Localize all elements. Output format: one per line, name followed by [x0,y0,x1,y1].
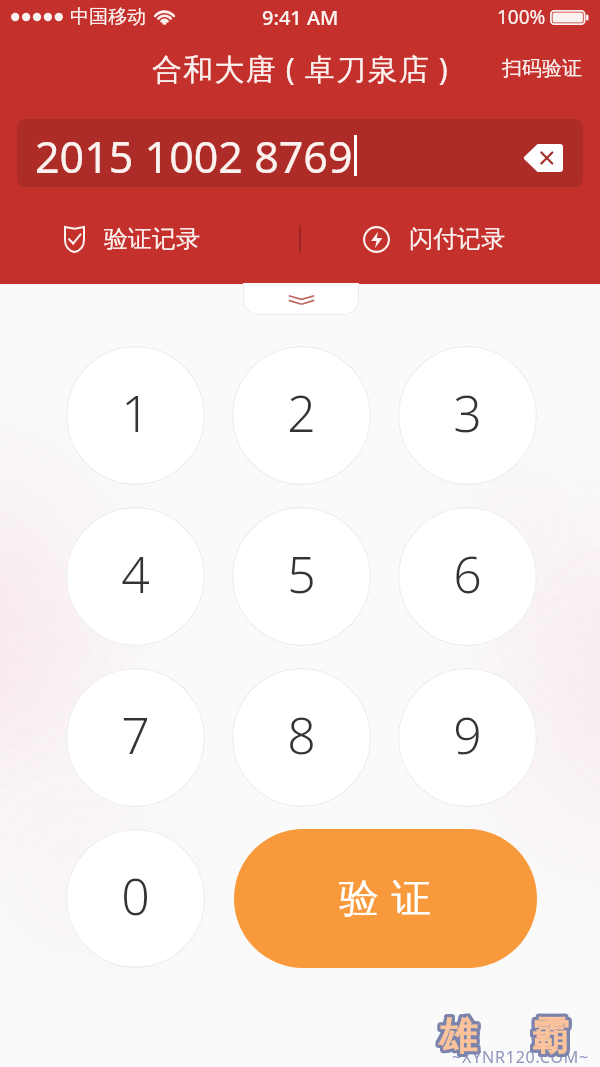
staticText: 雄 [442,1014,480,1062]
staticText: 雄 [440,1015,478,1063]
button[interactable]: Delete [511,128,575,187]
button[interactable]: 2015 1002 8769 [17,119,583,187]
button[interactable]: 5 [232,507,371,646]
staticText: 雄 [439,1015,477,1063]
button[interactable]: 7 [66,668,205,807]
staticText: 霸 [531,1012,569,1060]
staticText: 雄 [441,1010,479,1058]
staticText: 霸 [533,1010,571,1058]
staticText: 0 [121,862,150,930]
staticText: 霸 [532,1009,570,1057]
button[interactable]: 4 [66,507,205,646]
button[interactable]: 扫码验证 [484,43,600,94]
staticText: 雄 [437,1013,475,1061]
staticText: 雄 [442,1012,480,1060]
staticText: 雄 [437,1010,475,1058]
staticText: 4 [121,540,150,608]
staticText: 2015 1002 8769 [35,127,353,186]
staticText: 霸 [532,1015,570,1063]
staticText: 霸 [534,1010,572,1058]
button[interactable]: 6 [398,507,537,646]
staticText: 霸 [531,1009,569,1057]
staticText: 雄 [441,1014,479,1062]
staticText: 霸 [528,1013,566,1061]
staticText: 验证记录 [104,224,200,254]
staticText: 霸 [529,1009,567,1057]
staticText: 雄 [441,1011,479,1059]
staticText: 霸 [534,1012,572,1060]
staticText: 雄 [441,1009,479,1057]
staticText: 100% [497,4,546,30]
staticText: 雄 [436,1014,474,1062]
staticText: 霸 [529,1011,567,1059]
staticText: 霸 [531,1015,569,1063]
staticText: 雄 [437,1009,475,1057]
staticText: 9:41 AM [262,4,339,31]
staticText: 雄 [442,1013,480,1061]
staticText: 雄 [440,1009,478,1057]
staticText: 雄 [438,1014,476,1062]
staticText: 雄 [439,1009,477,1057]
button[interactable]: 9 [398,668,537,807]
staticText: 霸 [528,1014,566,1062]
button[interactable]: 0 [66,829,205,968]
staticText: 雄 [436,1012,474,1060]
staticText: 雄 [436,1010,474,1058]
staticText: 霸 [529,1014,567,1062]
staticText: 雄 [441,1015,479,1063]
staticText: 9 [453,701,482,769]
staticText: 雄 [442,1011,480,1059]
staticText: 霸 [530,1015,568,1063]
staticText: 霸 [530,1010,568,1058]
staticText: 中国移动 [70,5,146,29]
staticText: 3 [453,379,482,447]
button[interactable]: 8 [232,668,371,807]
staticText: 霸 [532,1014,570,1062]
button[interactable]: 验证记录 [0,209,300,269]
staticText: 合和大唐 ( 卓刀泉店 ) [152,48,449,89]
staticText: 霸 [528,1012,566,1060]
staticText: 霸 [533,1013,571,1061]
staticText: 雄 [437,1014,475,1062]
staticText: 霸 [532,1010,570,1058]
staticText: 雄 [438,1009,476,1057]
staticText: 霸 [530,1014,568,1062]
button[interactable]: 1 [66,346,205,485]
staticText: 霸 [534,1013,572,1061]
button[interactable]: 3 [398,346,537,485]
staticText: 霸 [533,1009,571,1057]
staticText: 6 [453,540,482,608]
staticText: 雄 [437,1015,475,1063]
staticText: ~XYNR120.COM~ [452,1046,589,1067]
staticText: 雄 [438,1010,476,1058]
staticText: 霸 [534,1011,572,1059]
staticText: 扫码验证 [502,56,582,81]
staticText: 雄 [440,1010,478,1058]
staticText: 霸 [533,1011,571,1059]
staticText: 雄 [440,1014,478,1062]
staticText: 雄 [436,1011,474,1059]
staticText: 霸 [529,1013,567,1061]
staticText: 雄 [441,1013,479,1061]
button[interactable]: 验 证 [234,829,537,968]
staticText: 雄 [438,1015,476,1063]
staticText: 霸 [528,1011,566,1059]
staticText: 霸 [533,1015,571,1063]
staticText: 8 [287,701,316,769]
staticText: 雄 [442,1010,480,1058]
staticText: 霸 [528,1010,566,1058]
staticText: 霸 [530,1009,568,1057]
staticText: 验 证 [339,869,433,924]
staticText: 1 [121,379,150,447]
staticText: 闪付记录 [409,224,505,254]
staticText: 霸 [529,1015,567,1063]
staticText: 雄 [437,1011,475,1059]
button[interactable]: Collapse keyboard [243,283,359,315]
button[interactable]: 闪付记录 [300,209,600,269]
staticText: 7 [121,701,150,769]
staticText: 雄 [439,1012,477,1060]
staticText: 霸 [534,1014,572,1062]
staticText: 5 [287,540,316,608]
button[interactable]: 2 [232,346,371,485]
staticText: 霸 [529,1010,567,1058]
